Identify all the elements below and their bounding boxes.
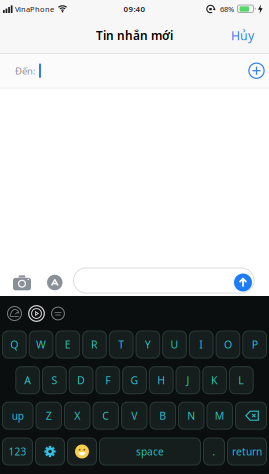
staticText: T xyxy=(118,337,124,352)
staticText: R xyxy=(91,337,98,352)
staticText: return xyxy=(232,445,262,458)
button[interactable]: I xyxy=(189,331,213,358)
button[interactable]: K xyxy=(203,367,226,394)
button[interactable]: J xyxy=(176,367,200,394)
button[interactable]: X xyxy=(64,402,90,429)
staticText: Q xyxy=(10,337,18,352)
staticText: C xyxy=(102,408,109,423)
staticText: Y xyxy=(145,337,151,352)
staticText: F xyxy=(105,373,110,387)
staticText: X xyxy=(74,408,80,423)
button[interactable]: W xyxy=(29,331,53,358)
button[interactable]: Y xyxy=(136,331,160,358)
button[interactable]: Camera xyxy=(13,274,31,290)
staticText: 09:40 xyxy=(123,4,145,14)
button[interactable]: B xyxy=(150,402,175,429)
button[interactable]: R xyxy=(83,331,106,358)
staticText: N xyxy=(187,408,195,423)
staticText: S xyxy=(51,373,57,387)
button[interactable]: T xyxy=(109,331,133,358)
button[interactable]: Recent App xyxy=(7,306,22,321)
staticText: Hủy xyxy=(231,27,254,44)
staticText: Tin nhắn mới xyxy=(96,27,173,44)
staticText: D xyxy=(77,373,85,387)
button[interactable]: L xyxy=(229,367,253,394)
button[interactable]: C xyxy=(93,402,118,429)
button[interactable]: D xyxy=(69,367,93,394)
staticText: W xyxy=(36,337,46,352)
button[interactable]: Q xyxy=(2,331,26,358)
staticText: Đến: xyxy=(15,64,36,77)
staticText: VinaPhone xyxy=(15,4,54,14)
staticText: B xyxy=(159,408,166,423)
button[interactable]: Hủy xyxy=(231,27,254,44)
button[interactable]: up xyxy=(2,402,33,429)
button[interactable]: 123 xyxy=(2,438,32,465)
button[interactable]: H xyxy=(149,367,173,394)
staticText: H xyxy=(157,373,165,387)
button[interactable]: . xyxy=(203,438,224,465)
staticText: Z xyxy=(46,408,52,423)
button[interactable]: space xyxy=(99,438,200,465)
staticText: I xyxy=(199,337,203,352)
staticText: U xyxy=(171,337,179,352)
button[interactable]: A xyxy=(16,367,40,394)
staticText: A xyxy=(24,373,31,387)
staticText: M xyxy=(215,408,225,423)
staticText: J xyxy=(186,373,189,387)
button[interactable]: iMessage Apps xyxy=(47,275,62,290)
staticText: 123 xyxy=(8,445,26,458)
button[interactable]: Settings xyxy=(35,438,64,465)
button[interactable]: Send xyxy=(234,273,252,291)
staticText: 68% xyxy=(220,4,234,14)
button[interactable]: V xyxy=(121,402,147,429)
staticText: P xyxy=(252,337,258,352)
button[interactable]: O xyxy=(216,331,240,358)
button[interactable]: App xyxy=(51,306,65,320)
button[interactable]: M xyxy=(207,402,232,429)
staticText: . xyxy=(212,445,215,458)
button[interactable]: U xyxy=(163,331,186,358)
button[interactable]: Z xyxy=(36,402,61,429)
staticText: L xyxy=(238,373,244,387)
staticText: E xyxy=(65,337,71,352)
button[interactable]: Add Contact xyxy=(248,62,265,79)
staticText: V xyxy=(131,408,137,423)
button[interactable]: E xyxy=(56,331,80,358)
button[interactable]: return xyxy=(227,438,266,465)
staticText: space xyxy=(136,445,164,458)
button[interactable]: P xyxy=(243,331,266,358)
button[interactable]: G xyxy=(123,367,146,394)
staticText: up xyxy=(12,409,24,423)
staticText: G xyxy=(130,373,138,387)
button[interactable]: Emoji xyxy=(67,438,96,465)
button[interactable]: App Store xyxy=(28,305,45,322)
button[interactable]: S xyxy=(43,367,66,394)
staticText: O xyxy=(224,337,232,352)
button[interactable]: N xyxy=(178,402,204,429)
staticText: K xyxy=(211,373,218,387)
button[interactable]: F xyxy=(96,367,120,394)
button[interactable]: Delete xyxy=(235,402,266,429)
